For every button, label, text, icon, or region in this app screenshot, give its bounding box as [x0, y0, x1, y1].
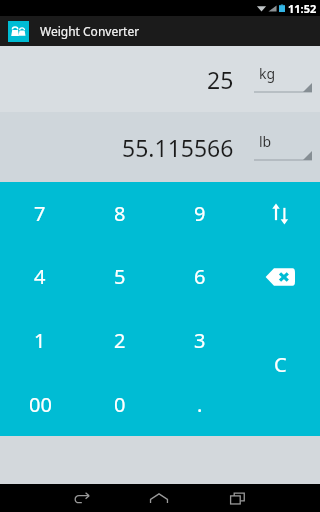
staticText: kg: [259, 64, 276, 83]
button[interactable]: C: [240, 309, 320, 436]
staticText: lb: [259, 132, 272, 151]
staticText: 8: [114, 200, 126, 227]
staticText: 7: [34, 200, 46, 227]
button[interactable]: 2: [80, 308, 160, 372]
staticText: .: [197, 391, 203, 418]
staticText: 9: [194, 200, 206, 227]
button[interactable]: lb: [254, 130, 312, 164]
button[interactable]: kg: [254, 62, 312, 96]
button[interactable]: 9: [160, 182, 240, 245]
button[interactable]: 1: [0, 308, 80, 372]
button[interactable]: 00: [0, 372, 80, 436]
button[interactable]: 25: [0, 64, 234, 95]
staticText: 11:52: [288, 1, 317, 16]
staticText: 6: [194, 263, 206, 290]
staticText: 2: [114, 327, 126, 354]
staticText: C: [274, 351, 287, 378]
button[interactable]: .: [160, 372, 240, 436]
staticText: 5: [114, 263, 126, 290]
button[interactable]: Swap units: [240, 182, 320, 245]
button[interactable]: Backspace: [240, 245, 320, 308]
button[interactable]: Home: [134, 484, 184, 512]
button[interactable]: 8: [80, 182, 160, 245]
staticText: 0: [114, 391, 126, 418]
staticText: 3: [194, 327, 206, 354]
staticText: 1: [34, 327, 46, 354]
staticText: Weight Converter: [40, 23, 140, 39]
button[interactable]: Back: [57, 484, 106, 512]
staticText: 4: [34, 263, 46, 290]
staticText: 25: [207, 64, 234, 95]
button[interactable]: Recent apps: [212, 484, 262, 512]
button[interactable]: 3: [160, 308, 240, 372]
staticText: 00: [29, 391, 52, 418]
button[interactable]: 0: [80, 372, 160, 436]
button[interactable]: 55.115566: [0, 132, 234, 163]
button[interactable]: 4: [0, 245, 80, 308]
button[interactable]: 7: [0, 182, 80, 245]
button[interactable]: 6: [160, 245, 240, 308]
button[interactable]: 5: [80, 245, 160, 308]
staticText: 55.115566: [122, 132, 234, 163]
